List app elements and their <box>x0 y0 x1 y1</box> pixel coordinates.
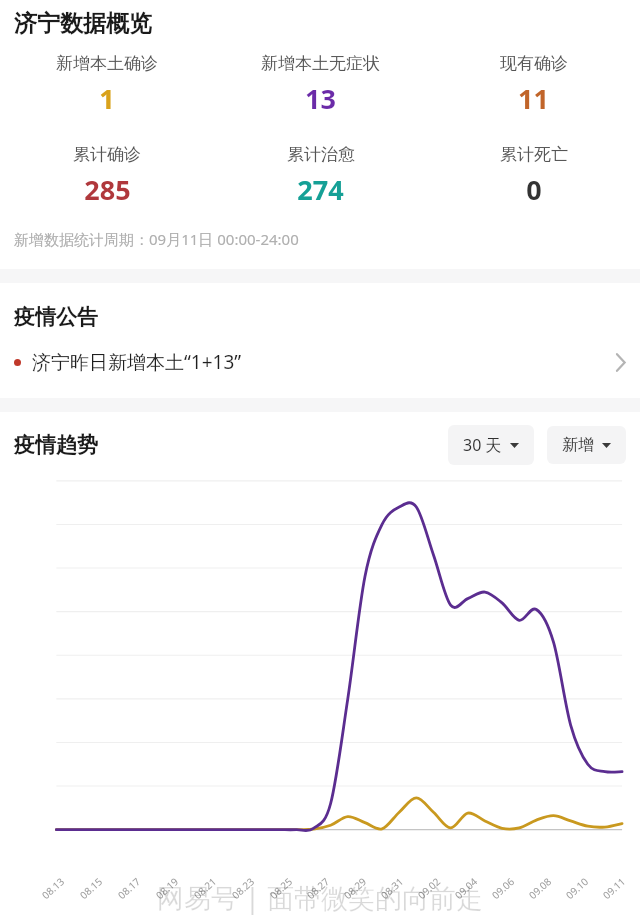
staticText: 08.29 <box>341 874 369 902</box>
staticText: 累计确诊 <box>73 144 141 165</box>
staticText: 累计治愈 <box>287 144 355 165</box>
staticText: 08.27 <box>304 874 332 902</box>
button[interactable]: 累计确诊 <box>0 144 214 208</box>
button[interactable]: 现有确诊 <box>427 53 640 117</box>
other: 查看详情 <box>615 353 626 372</box>
staticText: 08.31 <box>378 874 406 902</box>
staticText: 济宁昨日新增本土“1+13” <box>32 349 242 375</box>
staticText: 13 <box>305 80 336 117</box>
staticText: 08.25 <box>267 874 295 902</box>
staticText: 08.15 <box>77 874 105 902</box>
staticText: 0 <box>526 171 542 208</box>
button[interactable]: 新增 <box>547 426 626 464</box>
button[interactable]: 累计死亡 <box>427 144 640 208</box>
staticText: 285 <box>84 171 131 208</box>
staticText: 08.17 <box>115 874 143 902</box>
staticText: 09.08 <box>526 874 554 902</box>
staticText: 新增 <box>562 435 594 455</box>
staticText: 网易号 | 面带微笑的向前走 <box>157 879 483 916</box>
button[interactable]: 济宁昨日新增本土“1+13” <box>0 344 640 380</box>
staticText: 新增数据统计周期：09月11日 00:00-24:00 <box>14 229 299 249</box>
staticText: 09.11 <box>600 874 628 902</box>
staticText: 09.10 <box>563 874 591 902</box>
button[interactable]: 30 天 <box>448 425 534 465</box>
staticText: 09.06 <box>489 874 517 902</box>
button[interactable]: 新增本土确诊 <box>0 53 214 117</box>
staticText: 现有确诊 <box>500 53 568 74</box>
staticText: 09.04 <box>452 874 480 902</box>
button[interactable]: 新增本土无症状 <box>214 53 427 117</box>
staticText: 疫情公告 <box>14 304 98 330</box>
staticText: 新增本土确诊 <box>56 53 158 74</box>
staticText: 累计死亡 <box>500 144 568 165</box>
staticText: 1 <box>99 80 115 117</box>
staticText: 新增本土无症状 <box>261 53 380 74</box>
staticText: 08.23 <box>229 874 257 902</box>
staticText: 09.02 <box>415 874 443 902</box>
staticText: 11 <box>518 80 549 117</box>
staticText: 疫情趋势 <box>14 432 98 458</box>
staticText: 30 天 <box>463 434 502 456</box>
staticText: 济宁数据概览 <box>14 9 152 38</box>
staticText: 08.19 <box>153 874 181 902</box>
staticText: 08.21 <box>191 874 219 902</box>
button[interactable]: 累计治愈 <box>214 144 427 208</box>
staticText: 274 <box>297 171 344 208</box>
staticText: 08.13 <box>39 874 67 902</box>
